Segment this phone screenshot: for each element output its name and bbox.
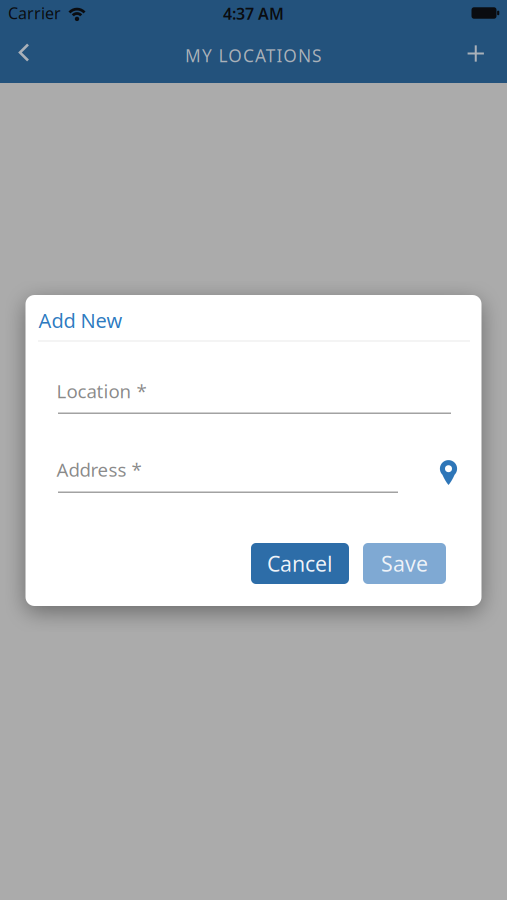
staticText: Address * [56, 457, 141, 482]
button[interactable]: Save [363, 543, 446, 584]
staticText: MY LOCATIONS [185, 44, 322, 67]
staticText: Carrier [8, 2, 61, 24]
staticText: Save [381, 549, 428, 578]
button[interactable]: Pick location on map [434, 455, 462, 489]
button[interactable]: Back [12, 42, 36, 69]
button[interactable]: Add [463, 43, 488, 68]
button[interactable]: Cancel [251, 543, 349, 584]
staticText: Location * [56, 378, 146, 403]
staticText: 4:37 AM [223, 3, 284, 24]
staticText: Add New [38, 307, 122, 334]
staticText: Cancel [267, 549, 333, 578]
